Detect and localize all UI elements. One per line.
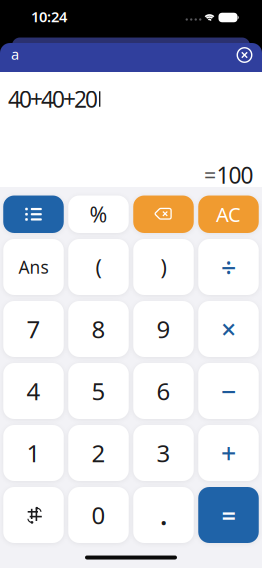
button[interactable]: = <box>198 487 259 543</box>
button[interactable]: % <box>68 195 129 233</box>
button[interactable]: 9 <box>133 301 194 357</box>
staticText: 6 <box>156 375 170 407</box>
staticText: AC <box>216 201 241 228</box>
button[interactable]: Delete <box>133 195 194 233</box>
button[interactable]: 5 <box>68 363 129 419</box>
button[interactable]: 0 <box>68 487 129 543</box>
staticText: 5 <box>91 375 105 407</box>
staticText: 0 <box>91 499 105 531</box>
staticText: 10:24 <box>31 7 67 26</box>
staticText: + <box>221 435 236 471</box>
button[interactable]: Rotate <box>3 487 64 543</box>
staticText: a <box>11 44 19 64</box>
staticText: × <box>221 311 236 347</box>
staticText: 1 <box>26 437 40 469</box>
staticText: 40+40+20 <box>8 84 98 114</box>
staticText: − <box>221 373 236 409</box>
button[interactable]: 6 <box>133 363 194 419</box>
button[interactable]: 3 <box>133 425 194 481</box>
button[interactable]: ) <box>133 239 194 295</box>
staticText: . <box>160 497 167 533</box>
button[interactable]: + <box>198 425 259 481</box>
staticText: ( <box>95 253 101 281</box>
staticText: ) <box>160 253 166 281</box>
staticText: % <box>89 200 107 228</box>
button[interactable]: History <box>3 195 64 233</box>
staticText: = <box>221 498 235 532</box>
staticText: 8 <box>91 313 105 345</box>
staticText: 100 <box>216 160 253 190</box>
button[interactable]: 1 <box>3 425 64 481</box>
staticText: 4 <box>26 375 40 407</box>
button[interactable]: Ans <box>3 239 64 295</box>
button[interactable]: 7 <box>3 301 64 357</box>
staticText: 7 <box>26 313 40 345</box>
button[interactable]: × <box>198 301 259 357</box>
button[interactable]: − <box>198 363 259 419</box>
button[interactable]: 8 <box>68 301 129 357</box>
staticText: 3 <box>156 437 170 469</box>
button[interactable]: AC <box>198 195 259 233</box>
button[interactable]: ( <box>68 239 129 295</box>
staticText: ÷ <box>221 249 236 285</box>
button[interactable]: 4 <box>3 363 64 419</box>
button[interactable]: ÷ <box>198 239 259 295</box>
staticText: 9 <box>156 313 170 345</box>
staticText: = <box>204 161 216 189</box>
staticText: 2 <box>91 437 105 469</box>
button[interactable]: 2 <box>68 425 129 481</box>
staticText: Ans <box>18 255 48 278</box>
button[interactable]: Close ad <box>236 47 252 63</box>
button[interactable]: . <box>133 487 194 543</box>
